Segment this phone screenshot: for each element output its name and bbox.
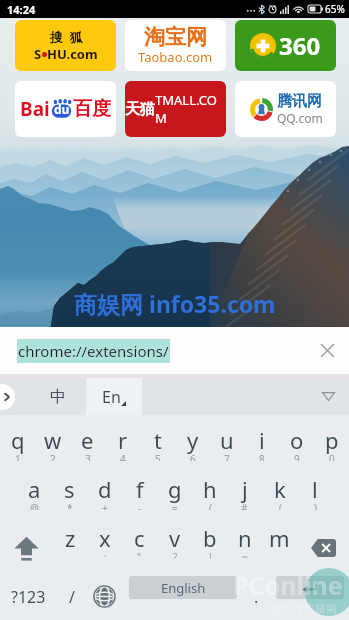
staticText: r bbox=[118, 425, 128, 455]
staticText: h bbox=[203, 474, 217, 504]
staticText: p bbox=[325, 425, 339, 455]
button[interactable]: h bbox=[192, 474, 227, 513]
staticText: m bbox=[269, 523, 290, 553]
staticText: q bbox=[11, 425, 25, 455]
button[interactable]: t bbox=[140, 425, 175, 464]
staticText: 5 bbox=[155, 452, 161, 461]
staticText: 3 bbox=[85, 452, 91, 461]
staticText: 1 bbox=[15, 452, 21, 461]
staticText: 9 bbox=[294, 452, 300, 461]
staticText: ~ bbox=[242, 550, 248, 559]
button[interactable]: a bbox=[17, 474, 52, 513]
staticText: TMALL.COM bbox=[155, 91, 226, 127]
button[interactable]: n bbox=[227, 523, 262, 562]
staticText: 中 bbox=[50, 387, 66, 407]
button[interactable]: Clear text bbox=[320, 343, 335, 358]
button[interactable]: v bbox=[157, 523, 192, 562]
staticText: chrome://extensions/ bbox=[18, 341, 169, 361]
button[interactable]: e bbox=[70, 425, 105, 464]
button[interactable]: 中 bbox=[30, 378, 86, 415]
button[interactable]: Bai bbox=[15, 81, 116, 137]
staticText: + bbox=[102, 501, 108, 510]
staticText: @ bbox=[30, 501, 39, 510]
staticText: ? bbox=[173, 550, 178, 559]
button[interactable]: chrome://extensions/ bbox=[18, 341, 169, 361]
staticText: 8 bbox=[259, 452, 265, 461]
button[interactable]: Go bbox=[276, 576, 344, 599]
button[interactable]: r bbox=[105, 425, 140, 464]
staticText: w bbox=[44, 425, 62, 455]
staticText: 太平洋电脑网 bbox=[271, 602, 337, 616]
button[interactable]: En bbox=[86, 378, 142, 415]
button[interactable]: d bbox=[87, 474, 122, 513]
staticText: 淘宝网 bbox=[144, 24, 207, 50]
button[interactable]: u bbox=[209, 425, 244, 464]
button[interactable]: q bbox=[0, 425, 35, 464]
staticText: " bbox=[137, 550, 142, 559]
staticText: l bbox=[312, 474, 318, 504]
staticText: 14:24 bbox=[7, 2, 36, 17]
staticText: b bbox=[203, 523, 217, 553]
staticText: x bbox=[99, 523, 111, 553]
button[interactable]: m bbox=[262, 523, 297, 562]
button[interactable]: 360 bbox=[235, 20, 336, 71]
button[interactable]: Shift bbox=[0, 523, 52, 572]
staticText: 6 bbox=[190, 452, 196, 461]
staticText: e bbox=[81, 425, 94, 455]
button[interactable]: w bbox=[35, 425, 70, 464]
staticText: k bbox=[274, 474, 286, 504]
staticText: : bbox=[104, 550, 107, 559]
button[interactable]: Backspace bbox=[297, 523, 349, 572]
button[interactable]: / bbox=[56, 572, 88, 620]
button[interactable]: . bbox=[240, 572, 272, 620]
staticText: info35.com bbox=[149, 288, 276, 319]
button[interactable]: x bbox=[87, 523, 122, 562]
staticText: 360 bbox=[279, 29, 321, 62]
button[interactable]: Change language bbox=[88, 572, 120, 620]
button[interactable]: g bbox=[157, 474, 192, 513]
button[interactable]: 淘宝网 bbox=[125, 20, 226, 71]
staticText: ?123 bbox=[11, 586, 46, 608]
button[interactable]: k bbox=[262, 474, 297, 513]
staticText: z bbox=[65, 523, 76, 553]
staticText: t bbox=[154, 425, 162, 455]
staticText: s bbox=[64, 474, 75, 504]
staticText: 65% bbox=[325, 2, 345, 16]
staticText: . bbox=[254, 586, 259, 608]
staticText: u bbox=[220, 425, 234, 455]
button[interactable]: z bbox=[53, 523, 88, 562]
button[interactable]: l bbox=[297, 474, 332, 513]
button[interactable]: j bbox=[227, 474, 262, 513]
button[interactable]: 搜 狐 bbox=[15, 20, 116, 71]
button[interactable]: y bbox=[175, 425, 210, 464]
button[interactable]: o bbox=[279, 425, 314, 464]
button[interactable]: c bbox=[122, 523, 157, 562]
staticText: ( bbox=[279, 501, 282, 510]
staticText: / bbox=[69, 586, 75, 608]
button[interactable]: s bbox=[52, 474, 87, 513]
button[interactable]: b bbox=[192, 523, 227, 562]
staticText: n bbox=[238, 523, 252, 553]
button[interactable]: 天猫 bbox=[125, 81, 226, 137]
staticText: ! bbox=[209, 550, 212, 559]
button[interactable]: f bbox=[122, 474, 157, 513]
staticText: 2 bbox=[50, 452, 56, 461]
button[interactable]: Expand toolbar bbox=[0, 378, 30, 415]
staticText: y bbox=[187, 425, 199, 455]
button[interactable]: English bbox=[129, 576, 237, 599]
button[interactable]: ?123 bbox=[0, 572, 56, 620]
button[interactable]: Hide keyboard bbox=[322, 392, 335, 401]
staticText: # bbox=[241, 501, 248, 510]
staticText: HU.com bbox=[47, 45, 98, 63]
staticText: f bbox=[136, 474, 144, 504]
button[interactable]: i bbox=[244, 425, 279, 464]
button[interactable]: p bbox=[314, 425, 349, 464]
staticText: g bbox=[168, 474, 182, 504]
staticText: 4 bbox=[120, 452, 126, 461]
staticText: 天猫 bbox=[125, 100, 155, 119]
staticText: En bbox=[102, 386, 121, 408]
staticText: * bbox=[67, 501, 73, 510]
button[interactable]: 腾讯网 bbox=[235, 81, 336, 137]
